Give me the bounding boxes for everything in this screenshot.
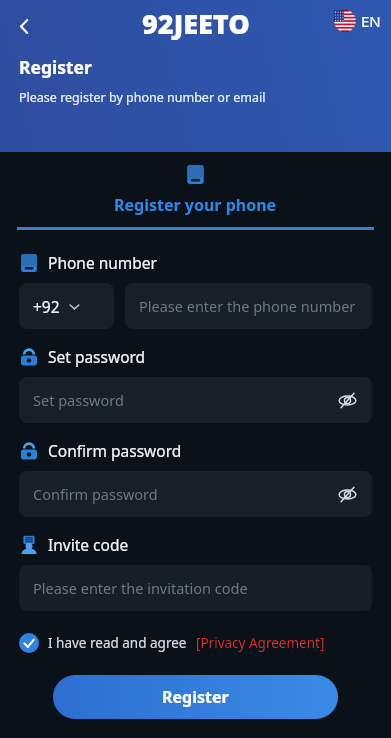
button[interactable]: Set password [19, 377, 372, 423]
staticText: Please register by phone number or email [19, 89, 266, 106]
button[interactable]: Show password [334, 481, 360, 507]
staticText: EN [361, 11, 381, 31]
staticText: Confirm password [33, 484, 158, 504]
staticText: I have read and agree [48, 634, 187, 652]
staticText: 92JEETO [142, 5, 250, 42]
button[interactable]: +92 [19, 283, 114, 329]
staticText: Set password [48, 346, 146, 367]
staticText: Register [162, 686, 229, 708]
button[interactable]: Please enter the phone number [125, 283, 372, 329]
button[interactable]: I have read and agree [19, 633, 325, 653]
button[interactable]: Show password [334, 387, 360, 413]
button[interactable]: Register your phone [0, 164, 391, 216]
staticText: Invite code [48, 534, 129, 555]
button[interactable]: Please enter the invitation code [19, 565, 372, 611]
staticText: Phone number [48, 252, 158, 273]
button[interactable]: Language English [334, 10, 381, 32]
button[interactable]: Back [6, 8, 42, 44]
staticText: Set password [33, 390, 124, 410]
staticText: Please enter the phone number [139, 296, 356, 316]
staticText: +92 [33, 296, 60, 317]
staticText: [Privacy Agreement] [196, 634, 325, 652]
button[interactable]: Register [53, 675, 338, 719]
button[interactable]: Confirm password [19, 471, 372, 517]
staticText: Please enter the invitation code [33, 578, 248, 598]
staticText: Register [19, 55, 92, 79]
staticText: Confirm password [48, 440, 182, 461]
staticText: Register your phone [114, 194, 277, 216]
